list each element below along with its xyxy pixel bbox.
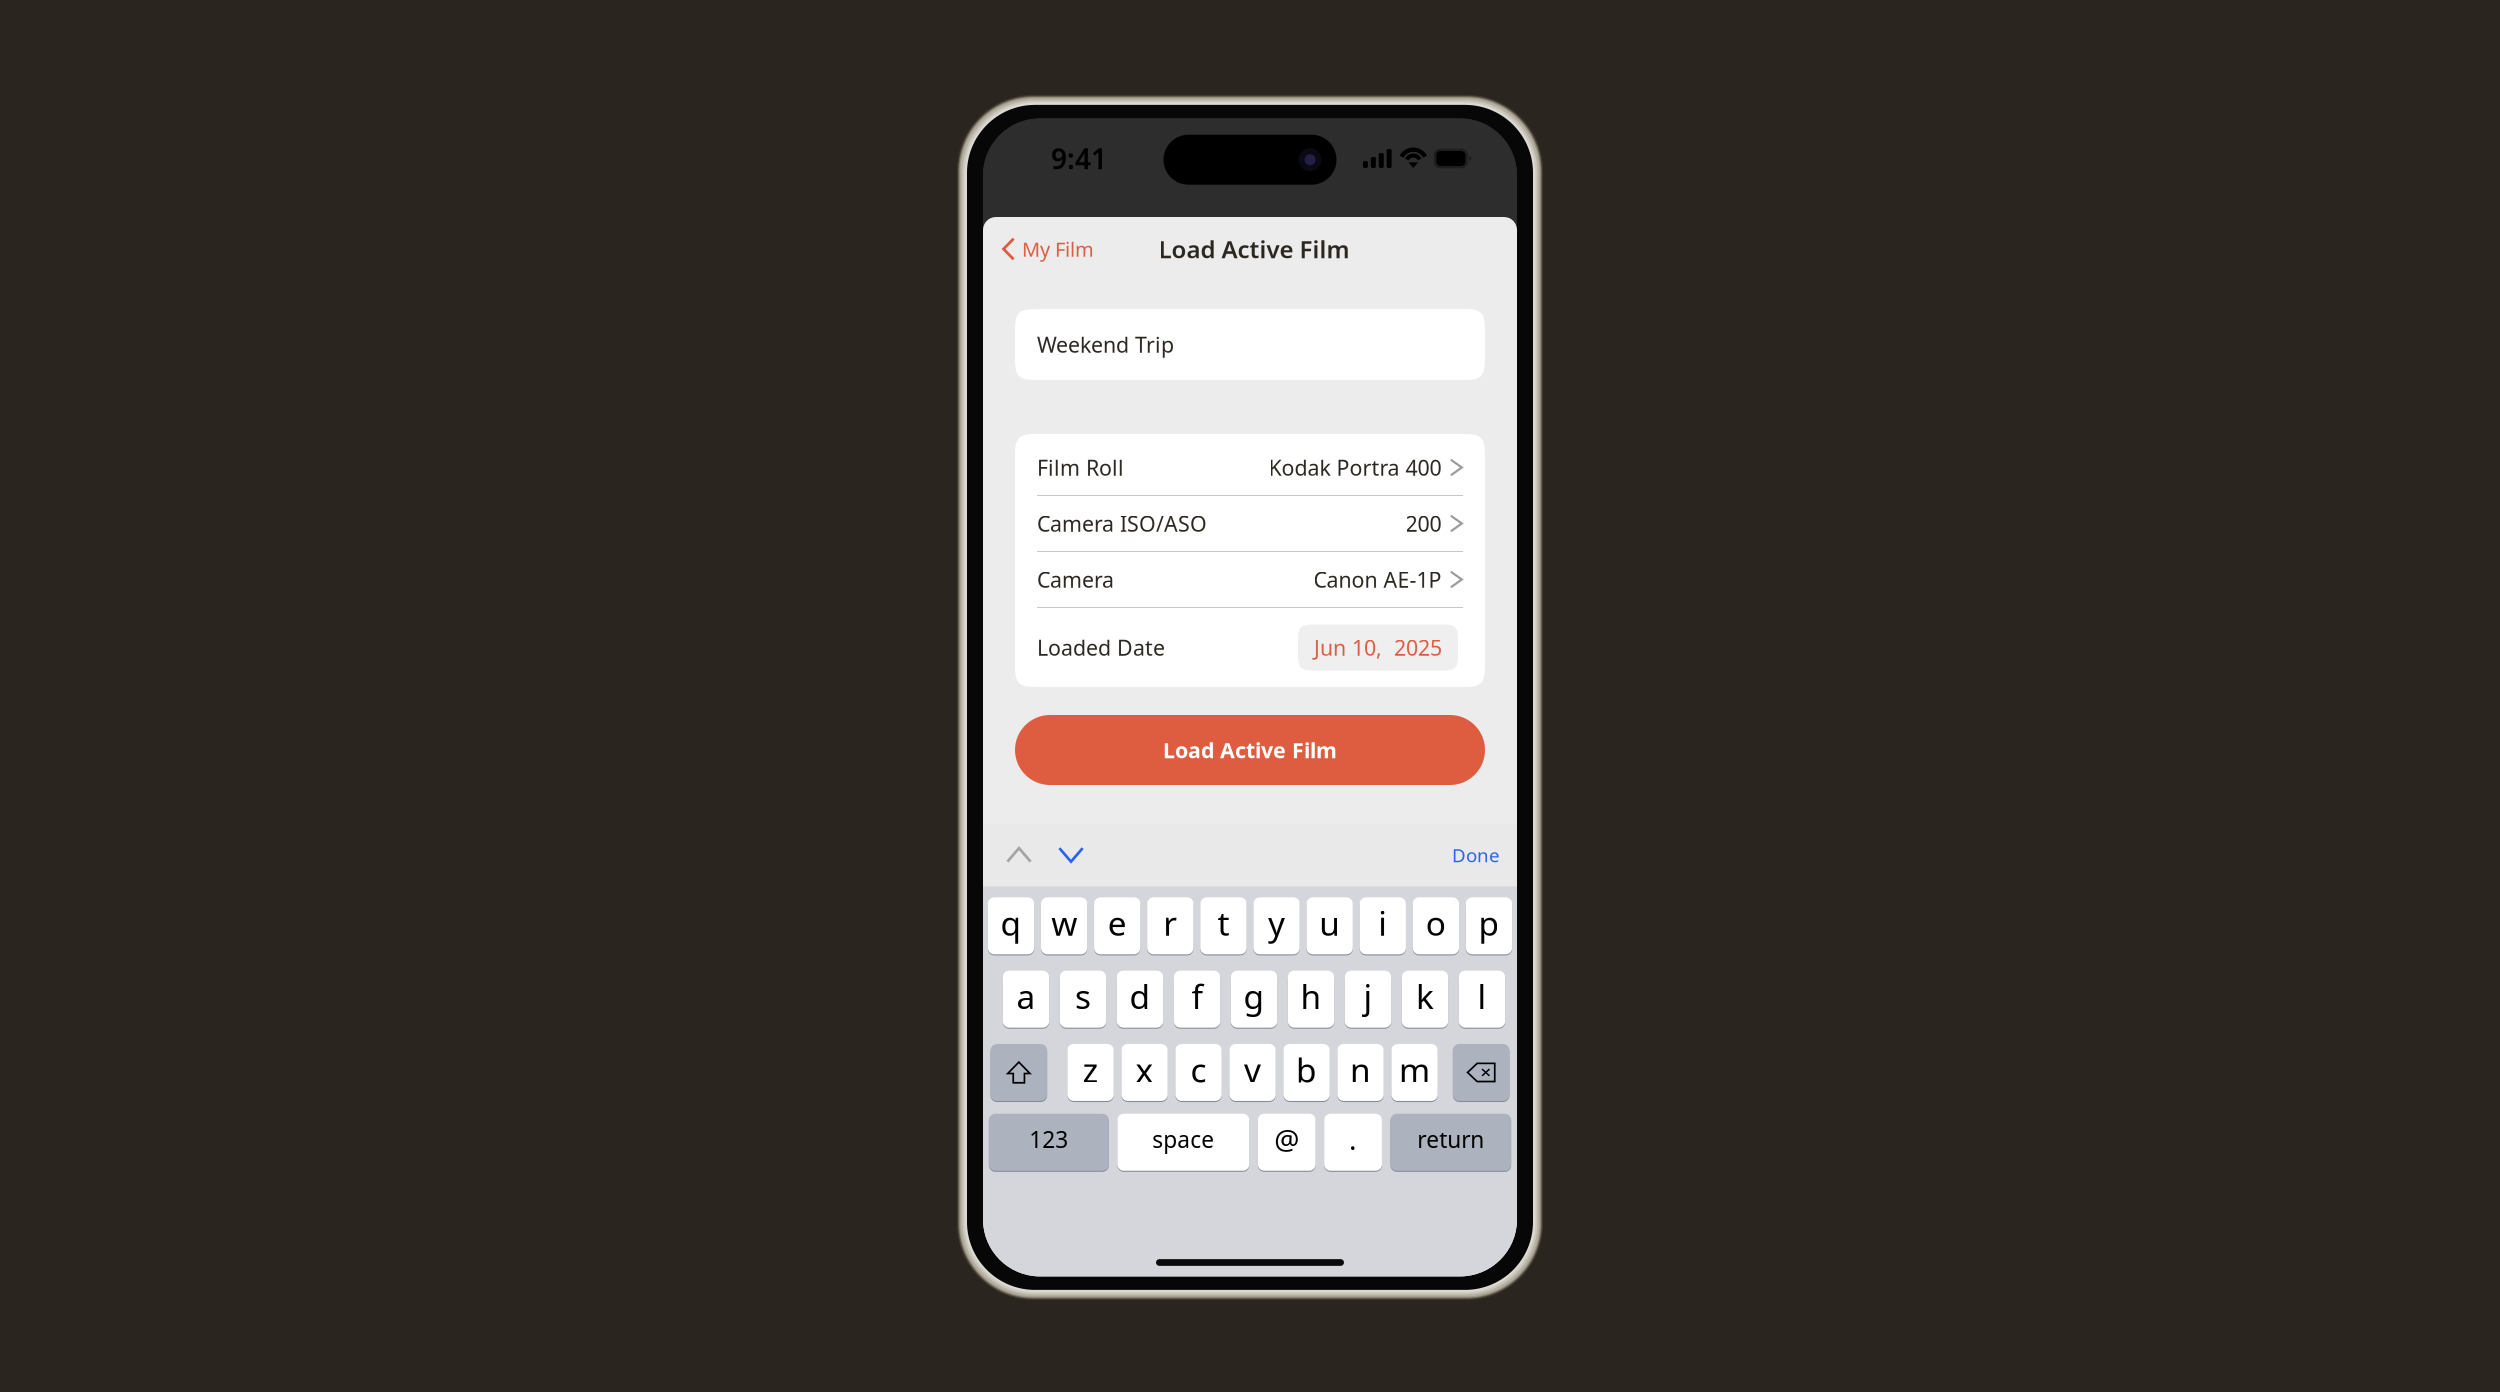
staticText: k <box>1416 974 1434 1018</box>
staticText: p <box>1478 901 1499 945</box>
staticText: x <box>1135 1047 1153 1092</box>
button[interactable]: Weekend Trip <box>1015 309 1485 380</box>
button[interactable]: a <box>1003 970 1049 1028</box>
button[interactable]: o <box>1413 897 1459 955</box>
button[interactable]: k <box>1402 970 1448 1028</box>
staticText: Camera ISO/ASO <box>1037 509 1207 538</box>
button[interactable]: d <box>1117 970 1163 1028</box>
button[interactable]: c <box>1175 1043 1222 1102</box>
button[interactable]: q <box>988 897 1034 955</box>
staticText: Film Roll <box>1037 453 1124 482</box>
button[interactable]: My Film <box>983 228 1104 270</box>
button[interactable]: Camera ISO/ASO <box>1015 496 1485 551</box>
staticText: i <box>1378 901 1387 945</box>
staticText: y <box>1268 901 1285 945</box>
staticText: s <box>1075 974 1091 1018</box>
staticText: Done <box>1452 842 1500 867</box>
button[interactable]: Done <box>1441 828 1511 881</box>
button[interactable]: f <box>1174 970 1220 1028</box>
staticText: w <box>1051 901 1077 945</box>
button[interactable]: u <box>1306 897 1353 955</box>
staticText: My Film <box>1022 236 1094 262</box>
button[interactable]: Shift <box>990 1043 1047 1102</box>
button[interactable]: Film Roll <box>1015 440 1485 495</box>
button[interactable]: Delete <box>1453 1043 1509 1102</box>
button[interactable]: x <box>1121 1043 1168 1102</box>
staticText: Load Active Film <box>1158 233 1349 265</box>
button[interactable]: t <box>1200 897 1247 955</box>
staticText: e <box>1108 901 1127 945</box>
staticText: l <box>1477 974 1486 1018</box>
staticText: @ <box>1274 1121 1299 1158</box>
button[interactable]: n <box>1337 1043 1384 1102</box>
button[interactable]: h <box>1288 970 1334 1028</box>
staticText: a <box>1016 974 1035 1018</box>
staticText: t <box>1217 901 1229 945</box>
button[interactable]: p <box>1466 897 1512 955</box>
staticText: m <box>1399 1047 1430 1092</box>
staticText: return <box>1417 1124 1484 1154</box>
button[interactable]: l <box>1459 970 1505 1028</box>
staticText: 9:41 <box>1051 140 1107 177</box>
button[interactable]: Next field <box>1045 827 1097 883</box>
button[interactable]: z <box>1067 1043 1114 1102</box>
button[interactable]: j <box>1345 970 1391 1028</box>
staticText: Weekend Trip <box>1037 330 1174 359</box>
staticText: q <box>1001 901 1022 945</box>
staticText: z <box>1082 1047 1098 1092</box>
button[interactable]: m <box>1391 1043 1438 1102</box>
staticText: d <box>1129 974 1150 1018</box>
staticText: g <box>1243 974 1264 1018</box>
staticText: Camera <box>1037 565 1114 594</box>
button[interactable]: s <box>1060 970 1106 1028</box>
button[interactable]: . <box>1324 1113 1382 1171</box>
button[interactable]: Load Active Film <box>1015 715 1485 785</box>
staticText: f <box>1191 974 1202 1018</box>
button[interactable]: g <box>1231 970 1277 1028</box>
staticText: Loaded Date <box>1037 633 1165 662</box>
staticText: Canon AE-1P <box>1314 565 1442 594</box>
staticText: . <box>1349 1121 1357 1158</box>
staticText: u <box>1319 901 1340 945</box>
staticText: 200 <box>1406 509 1442 538</box>
staticText: v <box>1244 1047 1261 1092</box>
staticText: h <box>1300 974 1321 1018</box>
button[interactable]: Previous field <box>993 827 1045 883</box>
button[interactable]: @ <box>1258 1113 1316 1171</box>
staticText: Kodak Portra 400 <box>1269 453 1442 482</box>
button[interactable]: y <box>1253 897 1300 955</box>
button[interactable]: i <box>1360 897 1406 955</box>
button[interactable]: Jun 10, 2025 <box>1298 624 1458 670</box>
button[interactable]: Camera <box>1015 552 1485 607</box>
button[interactable]: 123 <box>989 1113 1109 1171</box>
button[interactable]: b <box>1283 1043 1330 1102</box>
staticText: n <box>1350 1047 1371 1092</box>
staticText: b <box>1296 1047 1317 1092</box>
button[interactable]: r <box>1147 897 1194 955</box>
staticText: Jun 10, 2025 <box>1314 633 1442 662</box>
staticText: space <box>1152 1124 1214 1154</box>
staticText: r <box>1163 901 1177 945</box>
button[interactable]: e <box>1094 897 1140 955</box>
button[interactable]: w <box>1041 897 1087 955</box>
button[interactable]: return <box>1390 1113 1511 1171</box>
staticText: c <box>1190 1047 1206 1092</box>
staticText: o <box>1426 901 1446 945</box>
staticText: j <box>1363 974 1372 1018</box>
staticText: Load Active Film <box>1163 736 1337 764</box>
staticText: 123 <box>1029 1124 1068 1154</box>
button[interactable]: space <box>1117 1113 1249 1171</box>
button[interactable]: v <box>1229 1043 1276 1102</box>
